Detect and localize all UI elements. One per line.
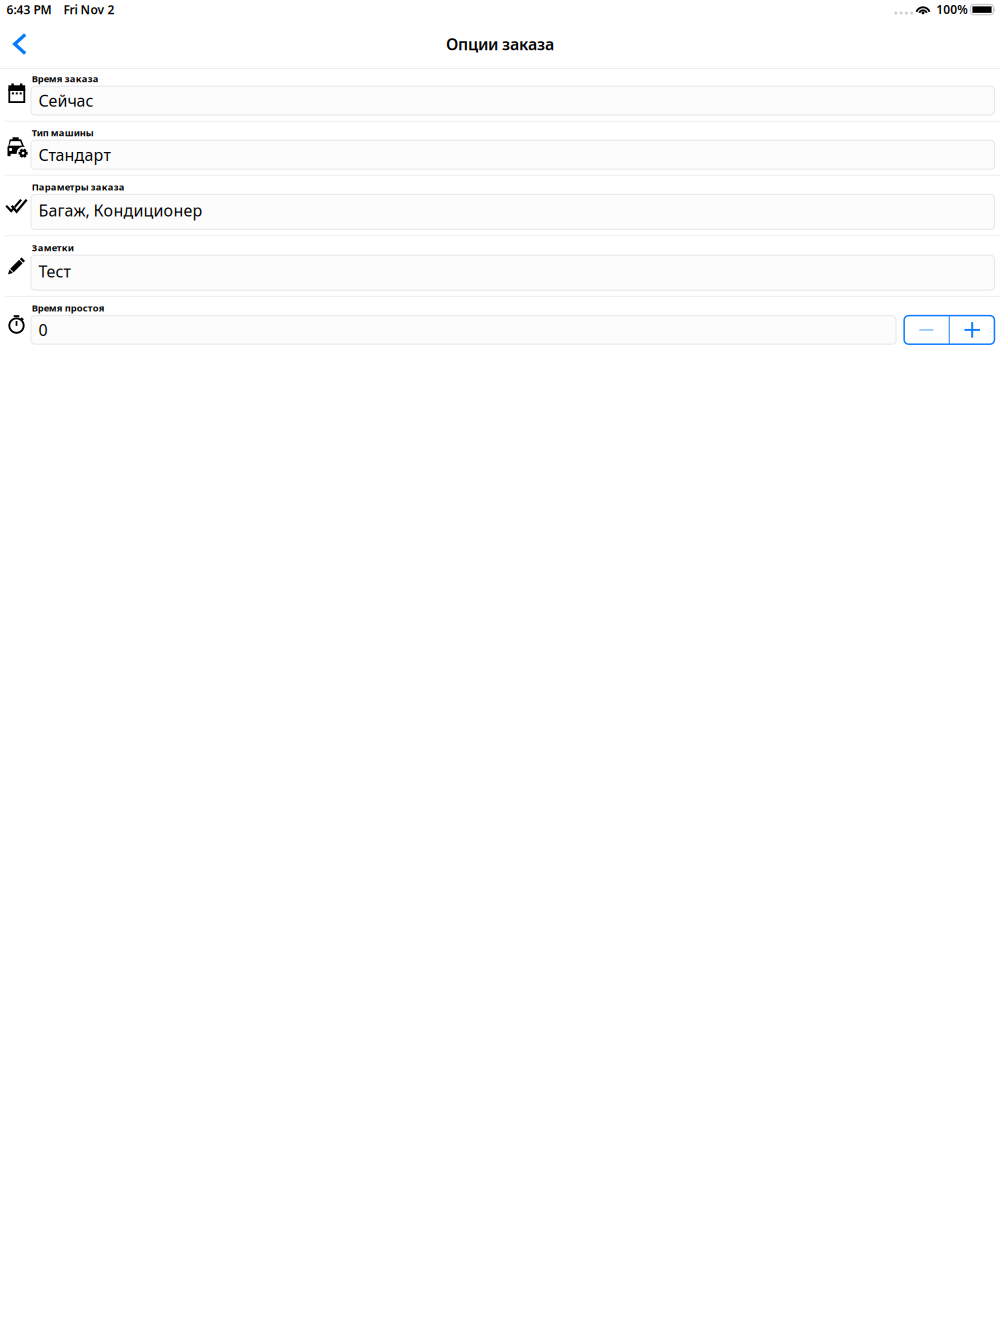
- staticText: Параметры заказа: [32, 181, 125, 193]
- staticText: Стандарт: [38, 144, 110, 165]
- staticText: Время простоя: [32, 302, 105, 314]
- button[interactable]: Back: [3, 23, 37, 65]
- staticText: Сейчас: [38, 90, 93, 111]
- staticText: Тест: [38, 261, 70, 282]
- staticText: Fri Nov 2: [63, 2, 114, 17]
- staticText: 0: [38, 319, 47, 340]
- staticText: Багаж, Кондиционер: [38, 200, 202, 221]
- button[interactable]: Increase: [950, 316, 994, 344]
- staticText: 100%: [936, 1, 968, 17]
- staticText: Тип машины: [32, 126, 94, 139]
- button[interactable]: Decrease: [904, 316, 949, 344]
- staticText: 6:43 PM: [6, 2, 51, 17]
- staticText: Опции заказа: [446, 33, 554, 55]
- staticText: Время заказа: [32, 72, 99, 85]
- staticText: Заметки: [32, 241, 74, 254]
